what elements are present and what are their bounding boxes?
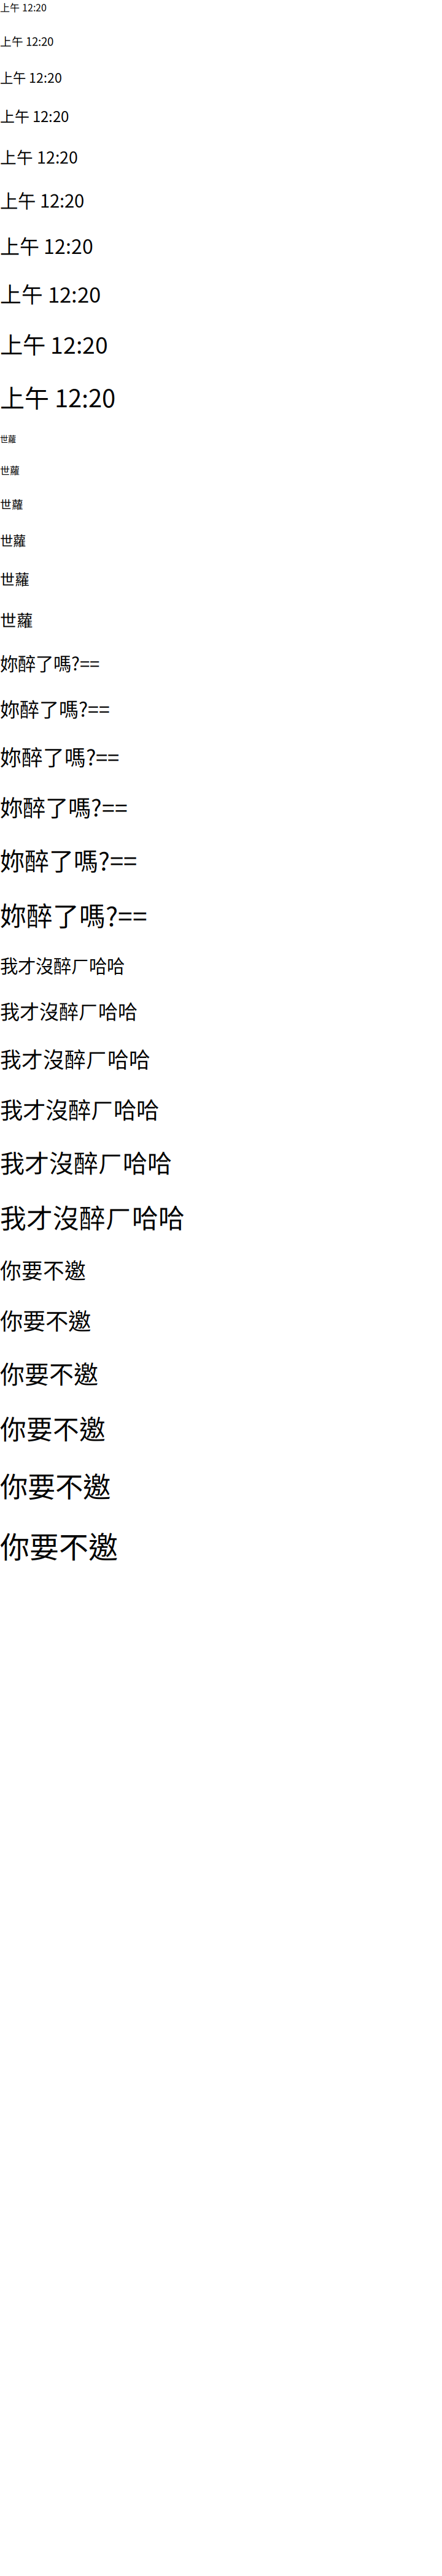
staticText: 我才沒醉ㄏ哈哈: [0, 1043, 150, 1074]
staticText: 你要不邀: [0, 1355, 98, 1390]
staticText: 上午 12:20: [0, 379, 115, 414]
staticText: 世蘿: [0, 463, 20, 477]
staticText: 我才沒醉ㄏ哈哈: [0, 996, 138, 1025]
staticText: 妳醉了嗎?==: [0, 790, 128, 823]
staticText: 世蘿: [0, 530, 26, 549]
staticText: 上午 12:20: [0, 231, 93, 260]
staticText: 上午 12:20: [0, 145, 78, 168]
staticText: 妳醉了嗎?==: [0, 694, 110, 723]
staticText: 上午 12:20: [0, 327, 108, 360]
staticText: 妳醉了嗎?==: [0, 842, 137, 877]
staticText: 妳醉了嗎?==: [0, 896, 147, 933]
staticText: 上午 12:20: [0, 33, 53, 49]
staticText: 你要不邀: [0, 1524, 118, 1566]
staticText: 我才沒醉ㄏ哈哈: [0, 1092, 159, 1126]
staticText: 上午 12:20: [0, 68, 62, 87]
staticText: 上午 12:20: [0, 278, 101, 309]
staticText: 世蘿: [0, 568, 29, 589]
staticText: 世蘿: [0, 608, 33, 631]
staticText: 世蘿: [0, 433, 16, 444]
staticText: 你要不邀: [0, 1465, 110, 1505]
staticText: 你要不邀: [0, 1254, 86, 1285]
staticText: 妳醉了嗎?==: [0, 741, 119, 772]
staticText: 你要不邀: [0, 1409, 106, 1447]
staticText: 世蘿: [0, 496, 23, 512]
staticText: 妳醉了嗎?==: [0, 650, 99, 676]
staticText: 我才沒醉ㄏ哈哈: [0, 952, 125, 978]
staticText: 我才沒醉ㄏ哈哈: [0, 1144, 172, 1179]
staticText: 我才沒醉ㄏ哈哈: [0, 1198, 185, 1236]
staticText: 上午 12:20: [0, 187, 84, 213]
staticText: 你要不邀: [0, 1303, 91, 1336]
staticText: 上午 12:20: [0, 0, 47, 14]
staticText: 上午 12:20: [0, 105, 69, 126]
